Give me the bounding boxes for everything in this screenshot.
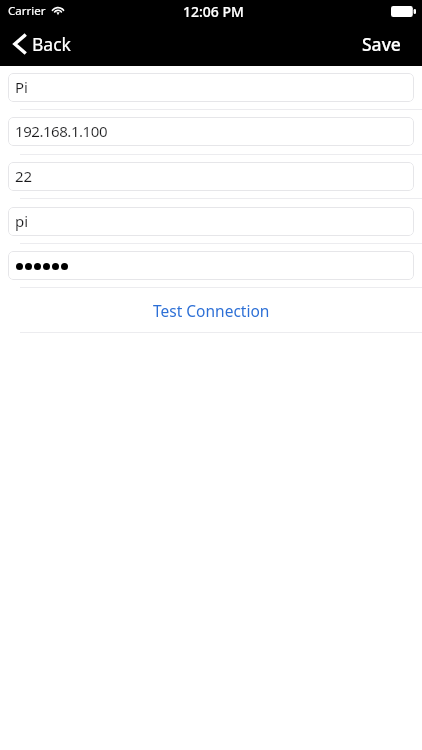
button[interactable]: Port [8, 162, 414, 191]
button[interactable]: Password [8, 251, 414, 280]
other: Battery full [391, 6, 416, 17]
staticText: 22 [15, 166, 33, 186]
button[interactable]: Name [8, 73, 414, 102]
button[interactable]: Back [0, 22, 81, 65]
staticText: pi [15, 211, 29, 231]
staticText: Back [32, 32, 71, 56]
button[interactable]: Test Connection [0, 288, 422, 332]
button[interactable]: Host [8, 117, 414, 146]
staticText: Test Connection [153, 300, 270, 321]
staticText: Save [362, 32, 401, 56]
staticText: Carrier [8, 3, 46, 19]
button[interactable]: Save [348, 22, 422, 65]
other: Wi-Fi signal [51, 4, 65, 15]
button[interactable]: User [8, 207, 414, 236]
staticText: Pi [15, 77, 28, 97]
staticText: 192.168.1.100 [15, 121, 108, 141]
staticText: 12:06 PM [183, 2, 244, 21]
